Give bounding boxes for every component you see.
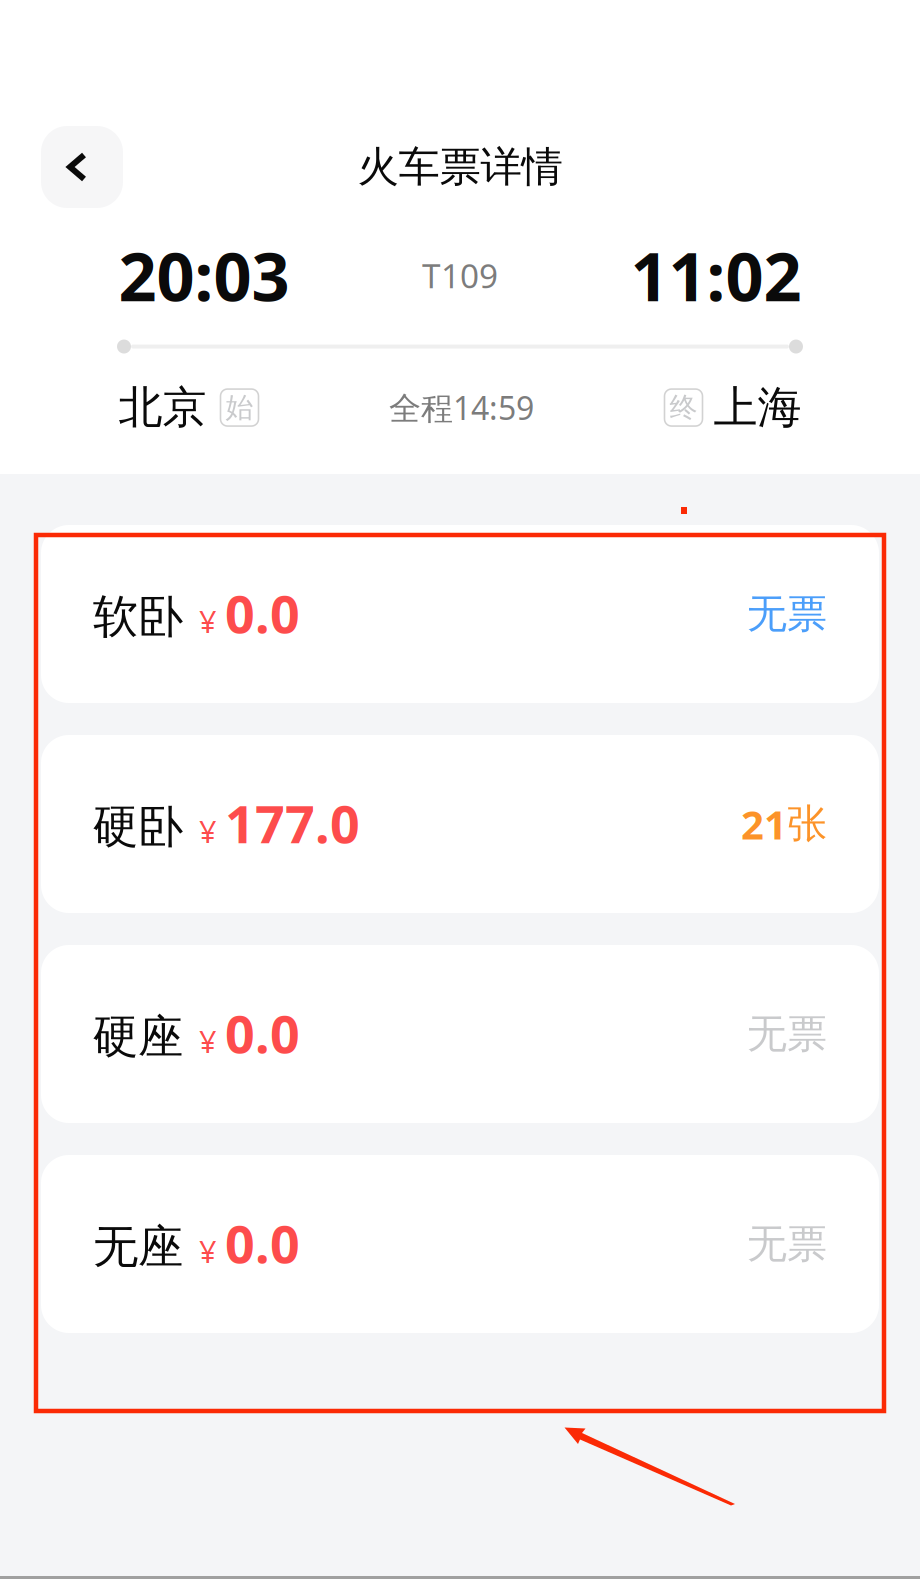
button[interactable]: 硬座: [41, 945, 879, 1123]
staticText: T109: [422, 253, 498, 297]
staticText: 无座: [93, 1219, 183, 1275]
staticText: 20:03: [118, 231, 289, 319]
button[interactable]: Back: [41, 126, 123, 208]
staticText: 张: [787, 799, 827, 848]
staticText: 全程14:59: [389, 386, 534, 429]
button[interactable]: 硬卧: [41, 735, 879, 913]
staticText: ¥: [199, 811, 217, 851]
button[interactable]: 软卧: [41, 525, 879, 703]
staticText: 无票: [747, 1009, 827, 1058]
staticText: 无票: [747, 589, 827, 638]
staticText: 硬座: [93, 1009, 183, 1065]
staticText: ¥: [199, 601, 217, 641]
staticText: 177.0: [225, 788, 360, 858]
staticText: ¥: [199, 1021, 217, 1061]
staticText: ¥: [199, 1231, 217, 1271]
staticText: 21: [741, 797, 787, 850]
staticText: 终: [669, 390, 697, 425]
button[interactable]: 无座: [41, 1155, 879, 1333]
staticText: 软卧: [93, 589, 183, 645]
staticText: 火车票详情: [357, 142, 562, 192]
staticText: 上海: [713, 380, 801, 434]
staticText: 0.0: [225, 578, 300, 648]
staticText: 硬卧: [93, 799, 183, 855]
staticText: 0.0: [225, 1208, 300, 1278]
staticText: 11:02: [630, 231, 801, 319]
staticText: 始: [225, 390, 253, 425]
staticText: 无票: [747, 1219, 827, 1268]
staticText: 北京: [118, 380, 206, 434]
staticText: 0.0: [225, 998, 300, 1068]
